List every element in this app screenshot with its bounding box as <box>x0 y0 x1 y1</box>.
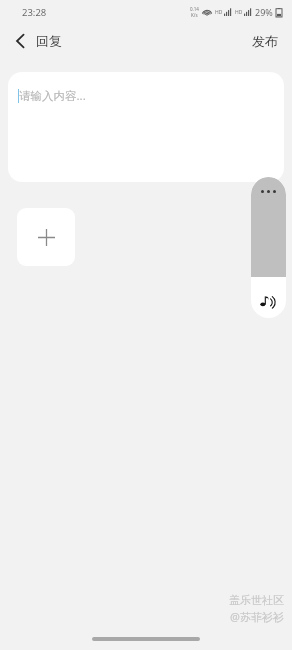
staticText: HD <box>235 9 243 16</box>
staticText: 盖乐世社区 <box>229 593 284 607</box>
staticText: HD <box>215 9 223 16</box>
other: Back <box>10 31 30 51</box>
button[interactable]: Back <box>0 27 70 55</box>
button[interactable]: 发布 <box>238 27 292 55</box>
staticText: @苏菲衫衫 <box>230 609 284 624</box>
staticText: 23:28 <box>22 6 47 19</box>
staticText: 回复 <box>36 33 62 49</box>
staticText: 请输入内容... <box>19 88 86 104</box>
staticText: 发布 <box>252 33 278 49</box>
button[interactable]: Floating audio widget <box>251 177 286 318</box>
button[interactable]: Add attachment <box>17 208 75 266</box>
staticText: 0.14 <box>190 6 199 12</box>
staticText: K/s <box>191 12 198 18</box>
button[interactable]: 请输入内容... <box>8 72 284 182</box>
staticText: 29% <box>255 6 273 18</box>
